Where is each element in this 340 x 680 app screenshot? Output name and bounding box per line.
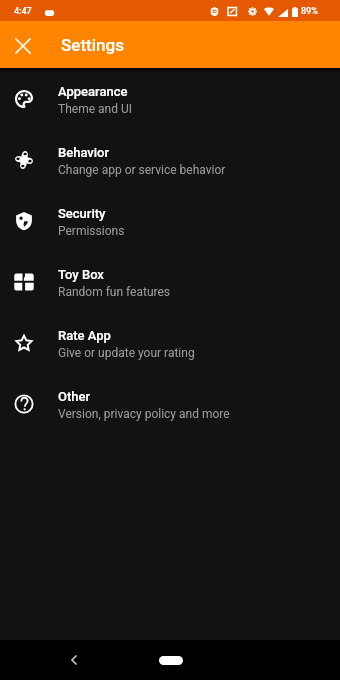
staticText: Toy Box xyxy=(58,267,104,282)
button[interactable]: Back xyxy=(60,646,88,674)
staticText: Give or update your rating xyxy=(58,346,195,360)
button[interactable]: Other xyxy=(0,373,340,434)
staticText: Settings xyxy=(61,35,124,55)
staticText: Behavior xyxy=(58,145,110,160)
staticText: Random fun features xyxy=(58,285,171,299)
button[interactable]: Home xyxy=(159,656,183,665)
staticText: Rate App xyxy=(58,328,111,343)
staticText: Change app or service behavior xyxy=(58,163,226,177)
button[interactable]: Behavior xyxy=(0,129,340,190)
button[interactable]: Rate App xyxy=(0,312,340,373)
staticText: Other xyxy=(58,389,91,404)
button[interactable]: Toy Box xyxy=(0,251,340,312)
staticText: 4:47 xyxy=(14,6,32,17)
staticText: Theme and UI xyxy=(58,102,132,116)
button[interactable]: Security xyxy=(0,190,340,251)
staticText: Appearance xyxy=(58,84,128,99)
staticText: 89% xyxy=(301,6,318,17)
button[interactable]: Close xyxy=(7,29,39,61)
staticText: Version, privacy policy and more xyxy=(58,407,230,421)
button[interactable]: Appearance xyxy=(0,68,340,129)
staticText: Security xyxy=(58,206,106,221)
staticText: Permissions xyxy=(58,224,125,238)
